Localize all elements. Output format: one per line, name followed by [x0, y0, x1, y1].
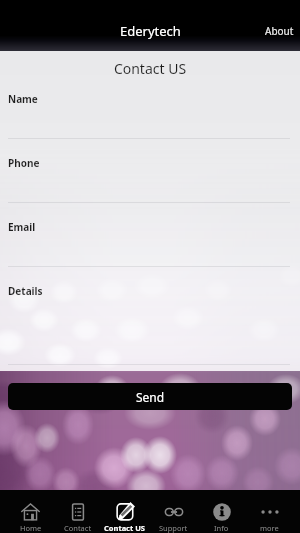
staticText: Name: [8, 92, 38, 106]
staticText: Support: [159, 523, 188, 533]
staticText: Ederytech: [120, 22, 181, 40]
staticText: Contact US: [104, 523, 146, 533]
button[interactable]: Home: [7, 490, 54, 533]
staticText: Contact: [64, 523, 92, 533]
staticText: Info: [214, 523, 229, 533]
button[interactable]: Contact: [54, 490, 101, 533]
staticText: Details: [8, 284, 43, 298]
staticText: more: [260, 523, 279, 533]
staticText: Home: [20, 523, 42, 533]
button[interactable]: About: [261, 21, 298, 41]
button[interactable]: Email: [0, 219, 300, 283]
button[interactable]: Send: [8, 383, 292, 410]
staticText: Phone: [8, 156, 40, 170]
button[interactable]: Name: [0, 91, 300, 155]
staticText: Contact US: [0, 59, 300, 78]
button[interactable]: Info: [197, 490, 245, 533]
button[interactable]: Support: [149, 490, 197, 533]
button[interactable]: Details: [0, 283, 300, 366]
button[interactable]: more: [245, 490, 293, 533]
staticText: Send: [136, 389, 165, 405]
staticText: Email: [8, 220, 36, 234]
button[interactable]: Contact US: [101, 490, 149, 533]
button[interactable]: Phone: [0, 155, 300, 219]
staticText: About: [265, 24, 294, 38]
